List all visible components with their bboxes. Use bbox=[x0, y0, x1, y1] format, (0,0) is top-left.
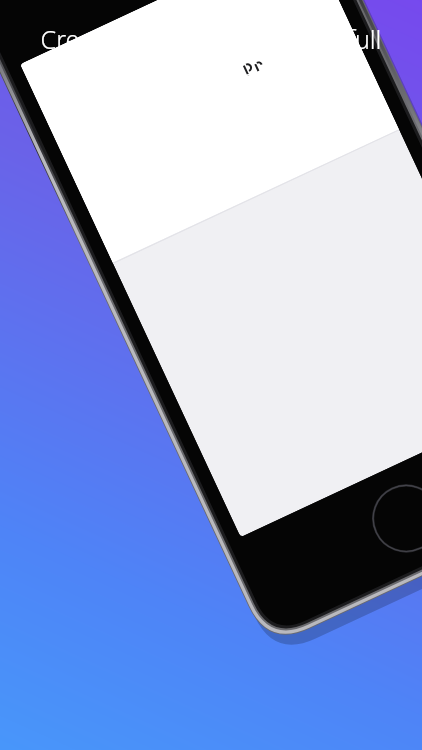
staticText: Create nutrition plans with full macronu… bbox=[16, 22, 406, 96]
